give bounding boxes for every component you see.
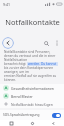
button[interactable]: Weitere Optionen xyxy=(52,38,62,48)
button[interactable]: Startbildschirm xyxy=(22,120,43,126)
staticText: Notfallkontakte xyxy=(5,17,60,27)
staticText: Notfallkontakte sind Personen, denen du … xyxy=(4,50,60,62)
staticText: Gesundheitsinformationen xyxy=(11,86,54,91)
staticText: bis zu vier dein Kontaktpersonen anzeige… xyxy=(4,66,60,74)
staticText: Bernd Mester xyxy=(11,94,33,99)
button[interactable]: SOS-Sprachübertragung anzeigen xyxy=(0,110,64,120)
staticText: werden. Du kannst xyxy=(28,62,57,66)
button[interactable]: Bernd Mester xyxy=(0,92,64,100)
button[interactable]: Zurück xyxy=(2,37,14,49)
staticText: ernsten Notfall auf sie zugreifen zu kön… xyxy=(4,74,60,82)
staticText: benachrichtigt xyxy=(4,62,27,66)
button[interactable]: werden. Du kannst xyxy=(27,62,58,66)
button[interactable]: Suchen xyxy=(41,38,51,48)
staticText: SOS-Sprachübertragung anzeigen xyxy=(3,113,51,117)
button[interactable]: Zurück xyxy=(43,120,64,126)
staticText: Notfallkontakt hinzufügen xyxy=(11,102,53,107)
button[interactable]: Notfallkontakt hinzufügen xyxy=(0,100,64,108)
staticText: 9:41 xyxy=(3,2,10,7)
button[interactable]: Gesundheitsinformationen xyxy=(0,84,64,92)
button[interactable]: Letzte Apps xyxy=(0,120,22,126)
